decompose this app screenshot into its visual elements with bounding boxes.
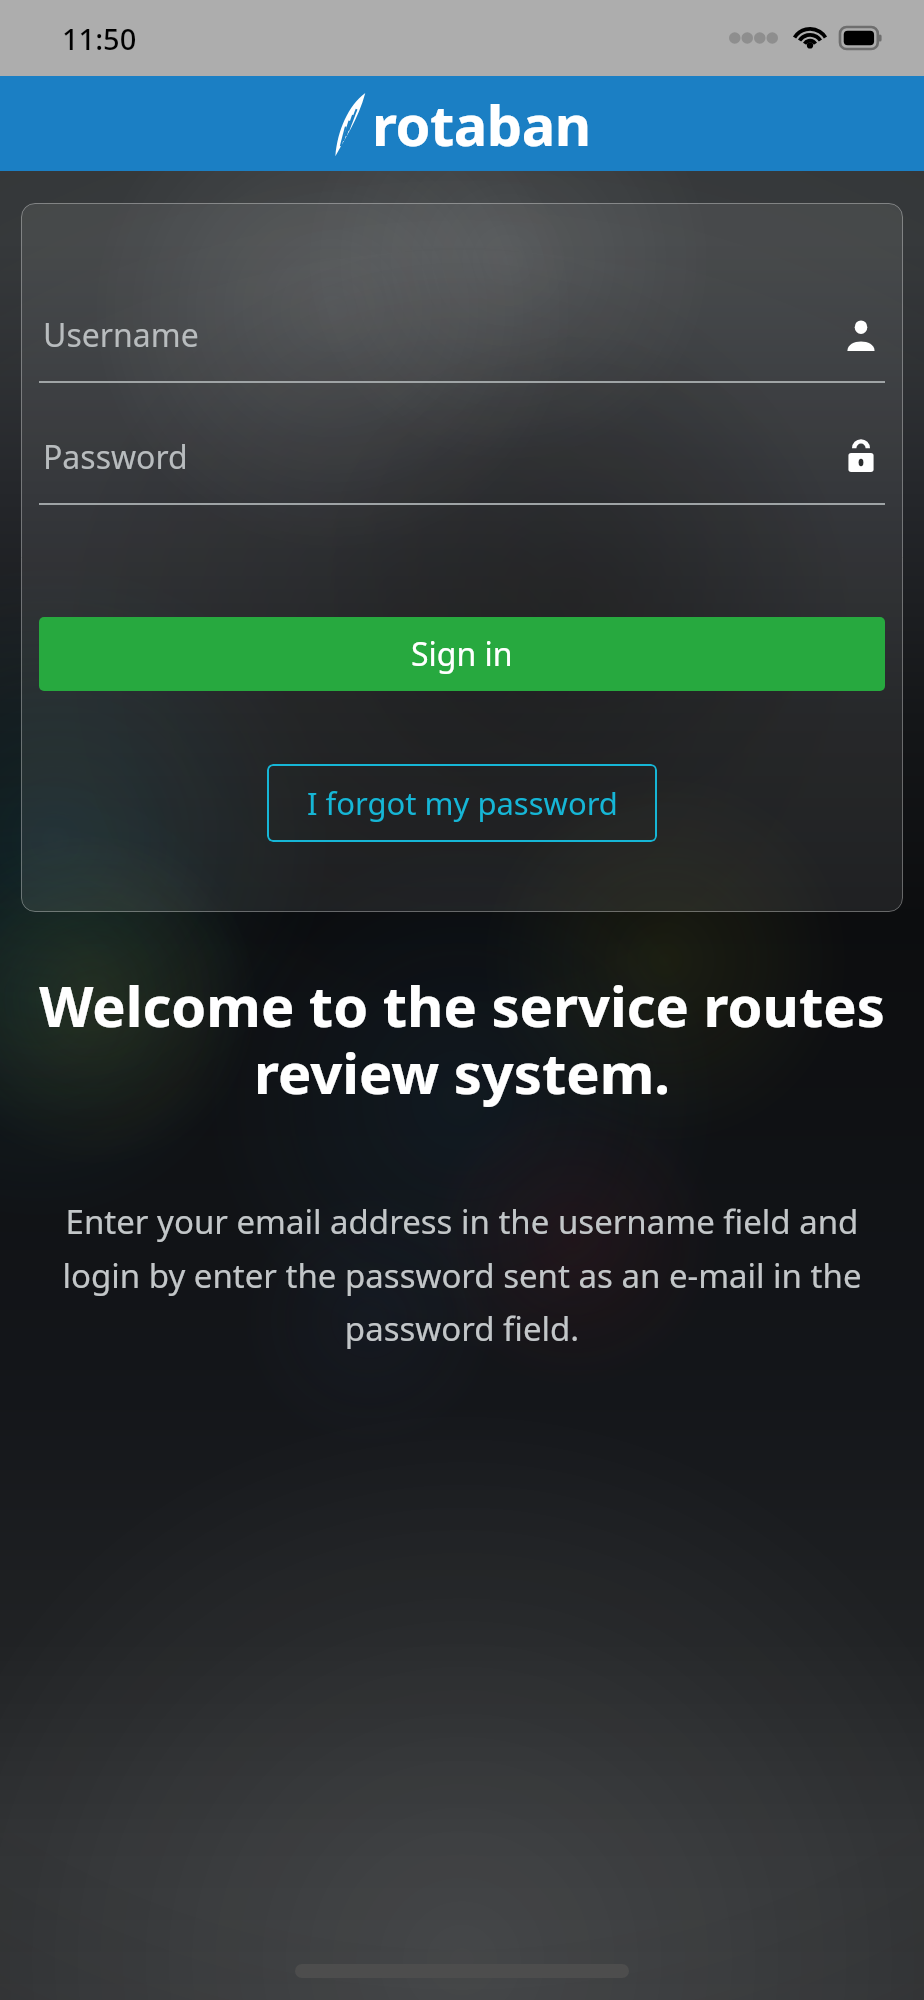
staticText: Username xyxy=(43,313,839,357)
staticText: Sign in xyxy=(411,632,513,676)
staticText: Enter your email address in the username… xyxy=(30,1199,894,1350)
button[interactable]: Sign in xyxy=(39,617,885,691)
other: Password xyxy=(839,435,883,479)
button[interactable]: Username xyxy=(39,313,885,383)
staticText: Welcome to the service routes review sys… xyxy=(30,967,894,1111)
staticText: 11:50 xyxy=(62,19,137,58)
staticText: Password xyxy=(43,435,839,479)
button[interactable]: I forgot my password xyxy=(267,764,657,842)
staticText: I forgot my password xyxy=(307,782,618,824)
staticText: rotaban xyxy=(372,86,591,162)
button[interactable]: Password xyxy=(39,435,885,505)
other: Username xyxy=(839,313,883,357)
